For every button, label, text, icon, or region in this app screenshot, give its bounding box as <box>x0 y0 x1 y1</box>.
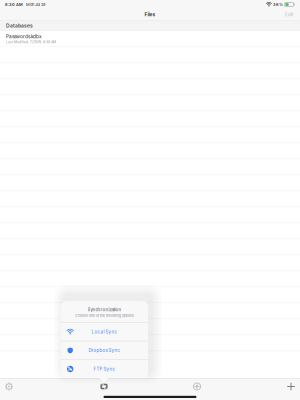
staticText: Dropbox Sync <box>88 348 120 353</box>
button[interactable]: FTP Sync <box>61 360 148 378</box>
button[interactable]: Add <box>283 379 299 393</box>
staticText: Databases <box>6 23 33 29</box>
button[interactable]: Synchronize <box>96 379 112 393</box>
staticText: Local Sync <box>91 329 117 335</box>
staticText: Edit <box>285 12 293 17</box>
staticText: FTP Sync <box>93 366 115 372</box>
button[interactable]: Local Sync <box>61 323 148 341</box>
button[interactable]: Help <box>189 379 205 393</box>
staticText: Mon Jul 29 <box>26 2 45 7</box>
button[interactable]: Dropbox Sync <box>61 341 148 359</box>
staticText: Last Modified: 7/29/19, 8:30 AM <box>6 40 56 44</box>
staticText: 8:30 AM <box>5 2 23 7</box>
staticText: 36% <box>273 2 283 7</box>
staticText: Synchronization <box>87 307 121 312</box>
staticText: Passwords.kdbx <box>6 34 42 39</box>
staticText: Files <box>144 12 155 17</box>
staticText: Choose one of the following options <box>75 314 134 318</box>
button[interactable]: Settings <box>1 379 17 393</box>
button[interactable]: Passwords.kdbx <box>0 31 300 47</box>
button[interactable]: Edit <box>281 10 297 19</box>
